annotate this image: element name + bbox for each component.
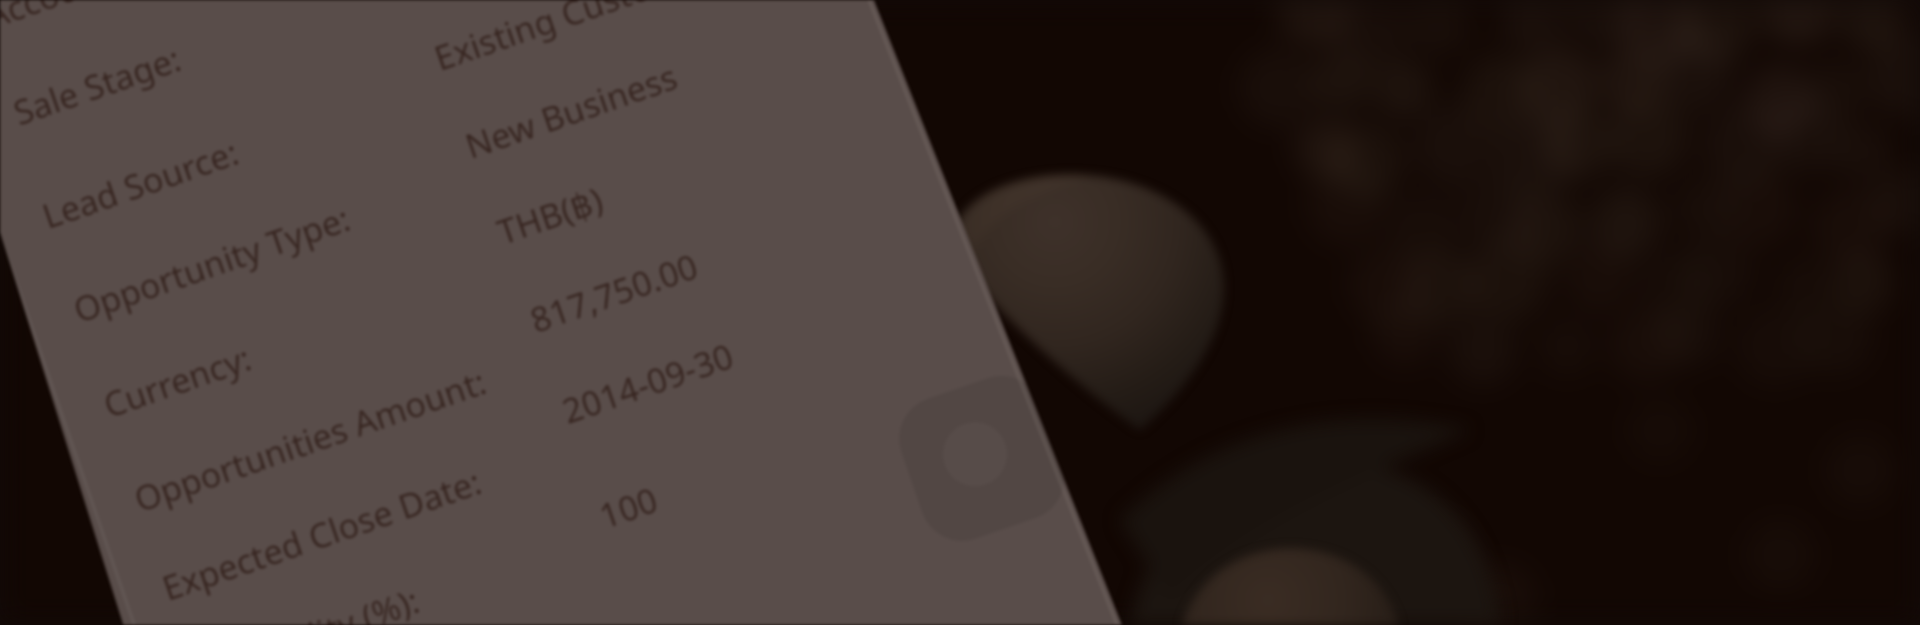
button[interactable]: Opportunities Amount: [8, 297, 872, 625]
button[interactable]: Currency: [8, 201, 872, 579]
button[interactable]: Expected Close Date: [8, 393, 872, 625]
button[interactable]: Account Name: [8, 0, 872, 197]
button[interactable]: Sale Stage: [8, 0, 872, 291]
button[interactable]: Opportunity detail [0, 0, 1920, 625]
button[interactable]: Lead Source: [8, 9, 872, 387]
button[interactable]: Add opportunity [905, 381, 1061, 537]
button[interactable]: Opportunity Type: [8, 105, 872, 483]
